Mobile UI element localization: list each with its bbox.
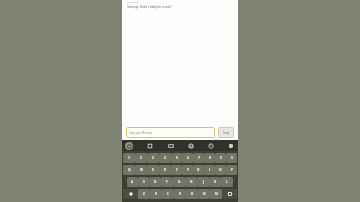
staticText: 0 — [231, 156, 233, 160]
button[interactable]: 0 — [226, 153, 237, 163]
staticText: T — [176, 168, 178, 172]
staticText: E — [152, 168, 154, 172]
staticText: F — [166, 180, 168, 184]
staticText: G — [178, 180, 181, 184]
button[interactable]: Shift — [123, 189, 138, 199]
staticText: J — [203, 180, 204, 184]
button[interactable]: 5 — [171, 153, 182, 163]
button[interactable]: V — [174, 189, 186, 199]
button[interactable]: F — [161, 177, 173, 187]
button[interactable]: Sticker — [207, 142, 215, 150]
staticText: I — [209, 168, 211, 172]
staticText: L — [226, 180, 228, 184]
button[interactable]: G — [173, 177, 185, 187]
button[interactable]: 8 — [204, 153, 215, 163]
staticText: M — [215, 192, 218, 196]
button[interactable]: O — [215, 165, 226, 175]
button[interactable]: K — [209, 177, 221, 187]
button[interactable]: 3 — [147, 153, 159, 163]
staticText: 7 — [198, 156, 200, 160]
button[interactable]: X — [150, 189, 162, 199]
staticText: H — [190, 180, 193, 184]
button[interactable]: Clipboard — [146, 142, 154, 150]
button[interactable]: D — [149, 177, 161, 187]
staticText: 3 — [152, 156, 154, 160]
button[interactable]: N — [198, 189, 210, 199]
button[interactable]: L — [221, 177, 233, 187]
button[interactable]: 1 — [123, 153, 135, 163]
button[interactable]: U — [193, 165, 204, 175]
staticText: D — [154, 180, 157, 184]
button[interactable]: C — [162, 189, 174, 199]
staticText: Send — [223, 131, 230, 135]
staticText: O — [219, 168, 222, 172]
staticText: B — [191, 192, 194, 196]
button[interactable]: B — [186, 189, 198, 199]
staticText: Type your Message — [129, 131, 153, 135]
button[interactable]: S — [138, 177, 149, 187]
button[interactable]: 9 — [215, 153, 226, 163]
staticText: S — [143, 180, 145, 184]
staticText: Q — [128, 168, 131, 172]
staticText: 1 — [128, 156, 130, 160]
button[interactable]: Send — [218, 127, 234, 138]
button[interactable]: I — [204, 165, 215, 175]
staticText: N — [203, 192, 206, 196]
staticText: 9 — [220, 156, 222, 160]
staticText: U — [197, 168, 200, 172]
button[interactable]: R — [159, 165, 171, 175]
button[interactable]: 4 — [159, 153, 171, 163]
staticText: V — [179, 192, 181, 196]
button[interactable]: Z — [138, 189, 150, 199]
staticText: W — [140, 168, 143, 172]
button[interactable]: M — [210, 189, 222, 199]
button[interactable]: A — [127, 177, 138, 187]
button[interactable]: Keyboard logo — [125, 142, 133, 150]
button[interactable]: GIF — [167, 142, 175, 150]
staticText: R — [164, 168, 167, 172]
button[interactable]: 2 — [135, 153, 147, 163]
button[interactable]: 7 — [193, 153, 204, 163]
staticText: 4 — [164, 156, 166, 160]
staticText: A — [131, 180, 134, 184]
staticText: Z — [143, 192, 145, 196]
staticText: 6 — [187, 156, 189, 160]
staticText: 8 — [209, 156, 211, 160]
staticText: Y — [187, 168, 189, 172]
button[interactable]: T — [171, 165, 182, 175]
button[interactable]: Backspace — [222, 189, 237, 199]
staticText: C — [167, 192, 170, 196]
button[interactable]: Settings — [187, 142, 195, 150]
button[interactable]: 6 — [182, 153, 193, 163]
button[interactable]: P — [226, 165, 237, 175]
staticText: X — [155, 192, 157, 196]
button[interactable]: Y — [182, 165, 193, 175]
button[interactable]: Emoji — [227, 142, 235, 150]
staticText: Outings: Hubs' ready for a visit? — [127, 5, 172, 9]
button[interactable]: Type your Message — [126, 127, 215, 138]
button[interactable]: H — [185, 177, 197, 187]
button[interactable]: J — [197, 177, 209, 187]
button[interactable]: Q — [123, 165, 135, 175]
staticText: P — [231, 168, 233, 172]
staticText: 5 — [176, 156, 178, 160]
staticText: K — [214, 180, 217, 184]
staticText: Group Chat — [127, 1, 139, 4]
button[interactable]: W — [135, 165, 147, 175]
button[interactable]: E — [147, 165, 159, 175]
staticText: 2 — [140, 156, 142, 160]
